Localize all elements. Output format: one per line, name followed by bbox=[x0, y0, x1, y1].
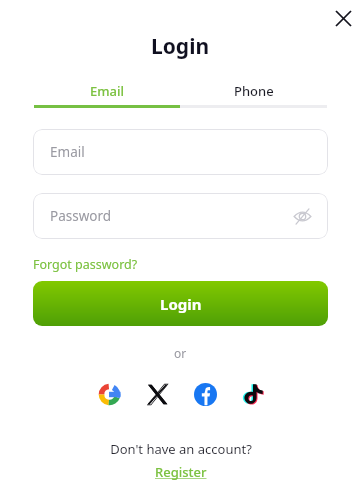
staticText: Don't have an account? bbox=[110, 440, 252, 458]
button[interactable]: Sign in with Google bbox=[92, 377, 126, 411]
staticText: Login bbox=[151, 32, 210, 61]
staticText: or bbox=[174, 345, 187, 361]
button[interactable]: Close bbox=[330, 5, 356, 31]
staticText: Phone bbox=[234, 82, 274, 100]
staticText: Email bbox=[90, 82, 125, 100]
button[interactable]: Show password bbox=[288, 202, 316, 230]
button[interactable]: Forgot password? bbox=[33, 253, 138, 276]
button[interactable]: Sign in with TikTok bbox=[236, 377, 270, 411]
button[interactable]: Phone bbox=[180, 78, 327, 103]
button[interactable]: Email bbox=[33, 129, 328, 175]
button[interactable]: Password bbox=[33, 193, 328, 239]
staticText: Login bbox=[160, 294, 202, 314]
staticText: Email bbox=[50, 143, 85, 161]
button[interactable]: Email bbox=[34, 78, 180, 103]
button[interactable]: Register bbox=[151, 462, 211, 482]
staticText: Forgot password? bbox=[33, 256, 138, 273]
button[interactable]: Sign in with Facebook bbox=[188, 377, 222, 411]
staticText: Password bbox=[50, 207, 112, 225]
button[interactable]: Sign in with X bbox=[140, 377, 174, 411]
button[interactable]: Login bbox=[33, 281, 328, 326]
staticText: Register bbox=[155, 463, 207, 481]
